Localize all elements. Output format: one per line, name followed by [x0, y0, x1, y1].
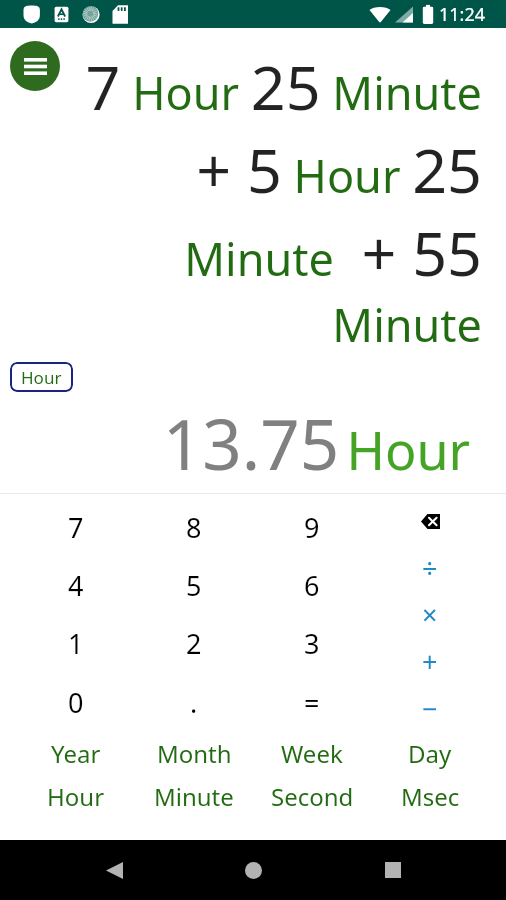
staticText: Minute [154, 780, 234, 813]
staticText: 5 [186, 567, 202, 604]
button[interactable]: Month [135, 732, 253, 775]
staticText: Month [157, 737, 232, 770]
staticText: 3 [304, 625, 320, 662]
button[interactable]: 1 [17, 614, 135, 673]
button[interactable]: Second [253, 775, 371, 818]
button[interactable]: ÷ [371, 544, 489, 591]
staticText: Week [281, 737, 343, 770]
staticText: 1 [68, 625, 84, 662]
staticText: 0 [68, 684, 84, 721]
button[interactable]: Minute [135, 775, 253, 818]
button[interactable]: 8 [135, 498, 253, 556]
button[interactable]: 2 [135, 614, 253, 673]
button[interactable]: Hour [17, 775, 135, 818]
staticText: Hour [47, 780, 105, 813]
button[interactable]: Hour [10, 362, 73, 392]
staticText: = [304, 684, 320, 721]
button[interactable]: Home [227, 844, 279, 896]
staticText: 2 [186, 625, 202, 662]
button[interactable]: Open navigation menu [10, 41, 60, 91]
staticText: Msec [401, 780, 460, 813]
button[interactable]: Day [371, 732, 489, 775]
staticText: 9 [304, 509, 320, 546]
staticText: 8 [186, 509, 202, 546]
button[interactable]: 5 [135, 556, 253, 614]
button[interactable]: 0 [17, 673, 135, 732]
staticText: 7 [68, 509, 84, 546]
staticText: ÷ [422, 549, 438, 586]
button[interactable]: − [371, 685, 489, 732]
staticText: Hour [21, 366, 62, 389]
button[interactable]: = [253, 673, 371, 732]
button[interactable]: Backspace [371, 498, 489, 544]
button[interactable]: 6 [253, 556, 371, 614]
button[interactable]: Msec [371, 775, 489, 818]
button[interactable]: + [371, 638, 489, 685]
staticText: + [422, 643, 438, 680]
staticText: 11:24 [439, 2, 486, 27]
staticText: 13.75 Hour [0, 396, 470, 490]
button[interactable]: Week [253, 732, 371, 775]
button[interactable]: Year [17, 732, 135, 775]
staticText: − [422, 690, 438, 727]
staticText: Year [51, 737, 101, 770]
button[interactable]: Back [88, 844, 140, 896]
button[interactable]: 7 [17, 498, 135, 556]
staticText: 4 [68, 567, 84, 604]
button[interactable]: Recent apps [367, 844, 419, 896]
staticText: × [422, 596, 438, 633]
staticText: 7 Hour 25 Minute + 5 Hour 25 Minute + 55… [44, 45, 482, 355]
staticText: Second [271, 780, 354, 813]
button[interactable]: × [371, 591, 489, 638]
staticText: . [190, 684, 198, 721]
button[interactable]: . [135, 673, 253, 732]
staticText: 6 [304, 567, 320, 604]
other: Backspace [421, 514, 440, 529]
button[interactable]: 9 [253, 498, 371, 556]
staticText: Day [408, 737, 452, 770]
button[interactable]: 4 [17, 556, 135, 614]
button[interactable]: 3 [253, 614, 371, 673]
